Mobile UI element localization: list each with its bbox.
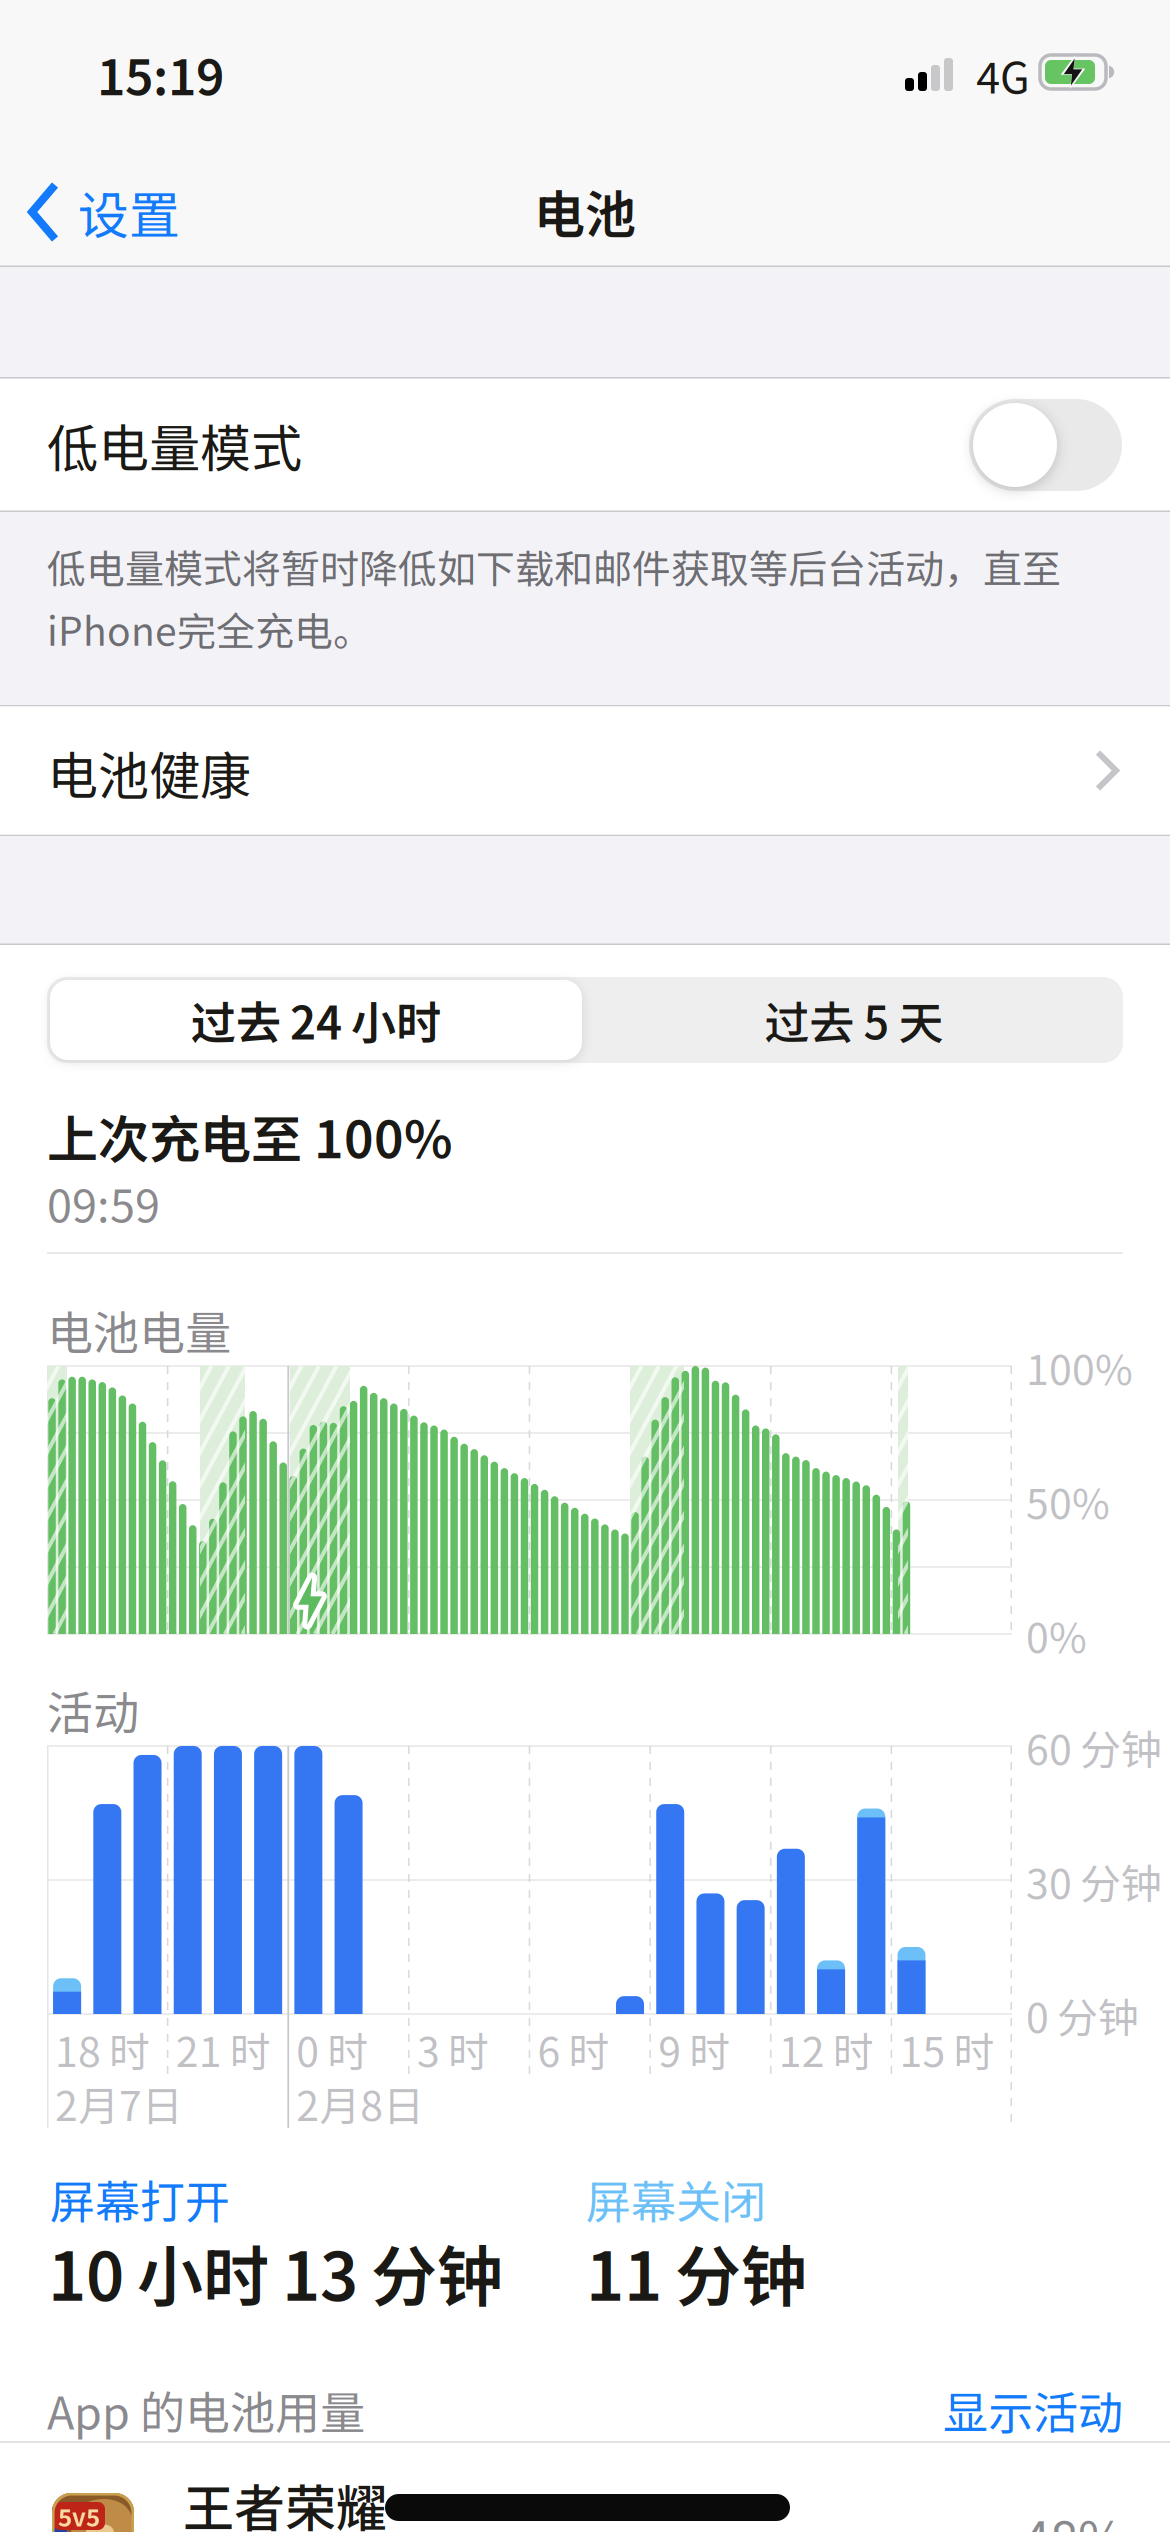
staticText: 4G — [976, 44, 1030, 106]
staticText: 12 时 — [779, 2019, 874, 2079]
button[interactable]: 设置 — [27, 172, 217, 252]
staticText: 0 时 — [296, 2019, 368, 2079]
staticText: 09:59 — [47, 1170, 160, 1236]
staticText: 0% — [1026, 1605, 1087, 1665]
staticText: 过去 24 小时 — [191, 987, 441, 1053]
staticText: 15:19 — [97, 38, 224, 109]
staticText: 30 分钟 — [1026, 1851, 1162, 1911]
staticText: 设置 — [78, 175, 180, 249]
staticText: 低电量模式将暂时降低如下载和邮件获取等后台活动，直至 — [47, 538, 1061, 594]
staticText: 10 小时 13 分钟 — [48, 2224, 503, 2320]
staticText: 15 时 — [899, 2019, 994, 2079]
staticText: 上次充电至 100% — [47, 1099, 453, 1173]
staticText: 王者荣耀 — [183, 2468, 387, 2532]
staticText: 100% — [1026, 1337, 1133, 1397]
staticText: 11 分钟 — [586, 2224, 807, 2320]
button[interactable]: 电池健康 — [0, 706, 1170, 834]
staticText: 2月7日 — [55, 2073, 183, 2133]
staticText: 2月8日 — [296, 2073, 424, 2133]
button[interactable]: 过去 5 天 — [585, 977, 1123, 1063]
staticText: 5v5 — [58, 2499, 100, 2532]
staticText: 电池健康 — [47, 736, 251, 809]
staticText: 9 时 — [658, 2019, 730, 2079]
staticText: iPhone完全充电。 — [47, 600, 372, 657]
staticText: 48% — [1022, 2500, 1125, 2532]
staticText: 3 时 — [417, 2019, 489, 2079]
staticText: 电池 — [534, 174, 636, 248]
staticText: 21 时 — [176, 2019, 271, 2079]
staticText: 活动 — [47, 1677, 139, 1743]
staticText: 屏幕关闭 — [586, 2166, 766, 2232]
staticText: App 的电池用量 — [47, 2377, 365, 2443]
staticText: 屏幕打开 — [50, 2166, 230, 2232]
staticText: 电池电量 — [47, 1297, 231, 1363]
button[interactable]: 过去 24 小时 — [50, 980, 582, 1060]
button[interactable]: 5v5 — [0, 2460, 1170, 2532]
button[interactable]: 显示活动 — [863, 2383, 1123, 2437]
staticText: 60 分钟 — [1026, 1717, 1162, 1777]
staticText: 18 时 — [55, 2019, 150, 2079]
staticText: 50% — [1026, 1471, 1110, 1531]
staticText: 6 时 — [537, 2019, 609, 2079]
staticText: 0 分钟 — [1026, 1985, 1139, 2045]
button[interactable]: 低电量模式 — [969, 399, 1122, 491]
staticText: 显示活动 — [943, 2377, 1123, 2443]
staticText: 过去 5 天 — [764, 987, 943, 1053]
staticText: 低电量模式 — [47, 408, 302, 482]
